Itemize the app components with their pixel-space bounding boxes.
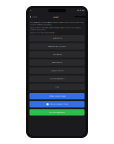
staticText: Purchase OBD Agent — [49, 111, 65, 113]
staticText: Menu — [32, 16, 37, 18]
staticText: Authorized Dealers — [49, 78, 64, 80]
button[interactable]: Firmware Update Guide — [29, 93, 84, 99]
staticText: Firmware Update Guide — [48, 95, 65, 97]
button[interactable]: Authorized Dealers — [29, 76, 84, 82]
button[interactable]: Purchase OBD Agent — [29, 109, 84, 115]
button[interactable]: Contact Support Team — [29, 101, 84, 107]
staticText: Select a topic from the list below to vi… — [29, 26, 81, 31]
button[interactable]: FAQ — [29, 84, 84, 90]
staticText: How to Install — [52, 37, 61, 39]
staticText: The following information will help you … — [29, 21, 83, 26]
button[interactable]: How to Install — [29, 35, 84, 41]
staticText: Support Portal — [51, 70, 63, 72]
staticText: Contact Support Team — [50, 103, 68, 105]
staticText: HELP — [53, 15, 58, 18]
staticText: User Manual — [52, 53, 61, 55]
staticText: OBD Agent Instructions — [48, 45, 66, 47]
button[interactable]: Menu — [28, 14, 37, 19]
button[interactable]: User Manual — [29, 51, 84, 58]
staticText: 9:41 — [29, 9, 32, 12]
staticText: Updates are released periodically. — [29, 31, 54, 34]
button[interactable]: Support Portal — [29, 67, 84, 74]
button[interactable]: OBD Agent Instructions — [29, 43, 84, 49]
staticText: Release Notes — [51, 61, 62, 63]
button[interactable]: Release Notes — [29, 59, 84, 66]
staticText: FAQ — [55, 86, 58, 88]
